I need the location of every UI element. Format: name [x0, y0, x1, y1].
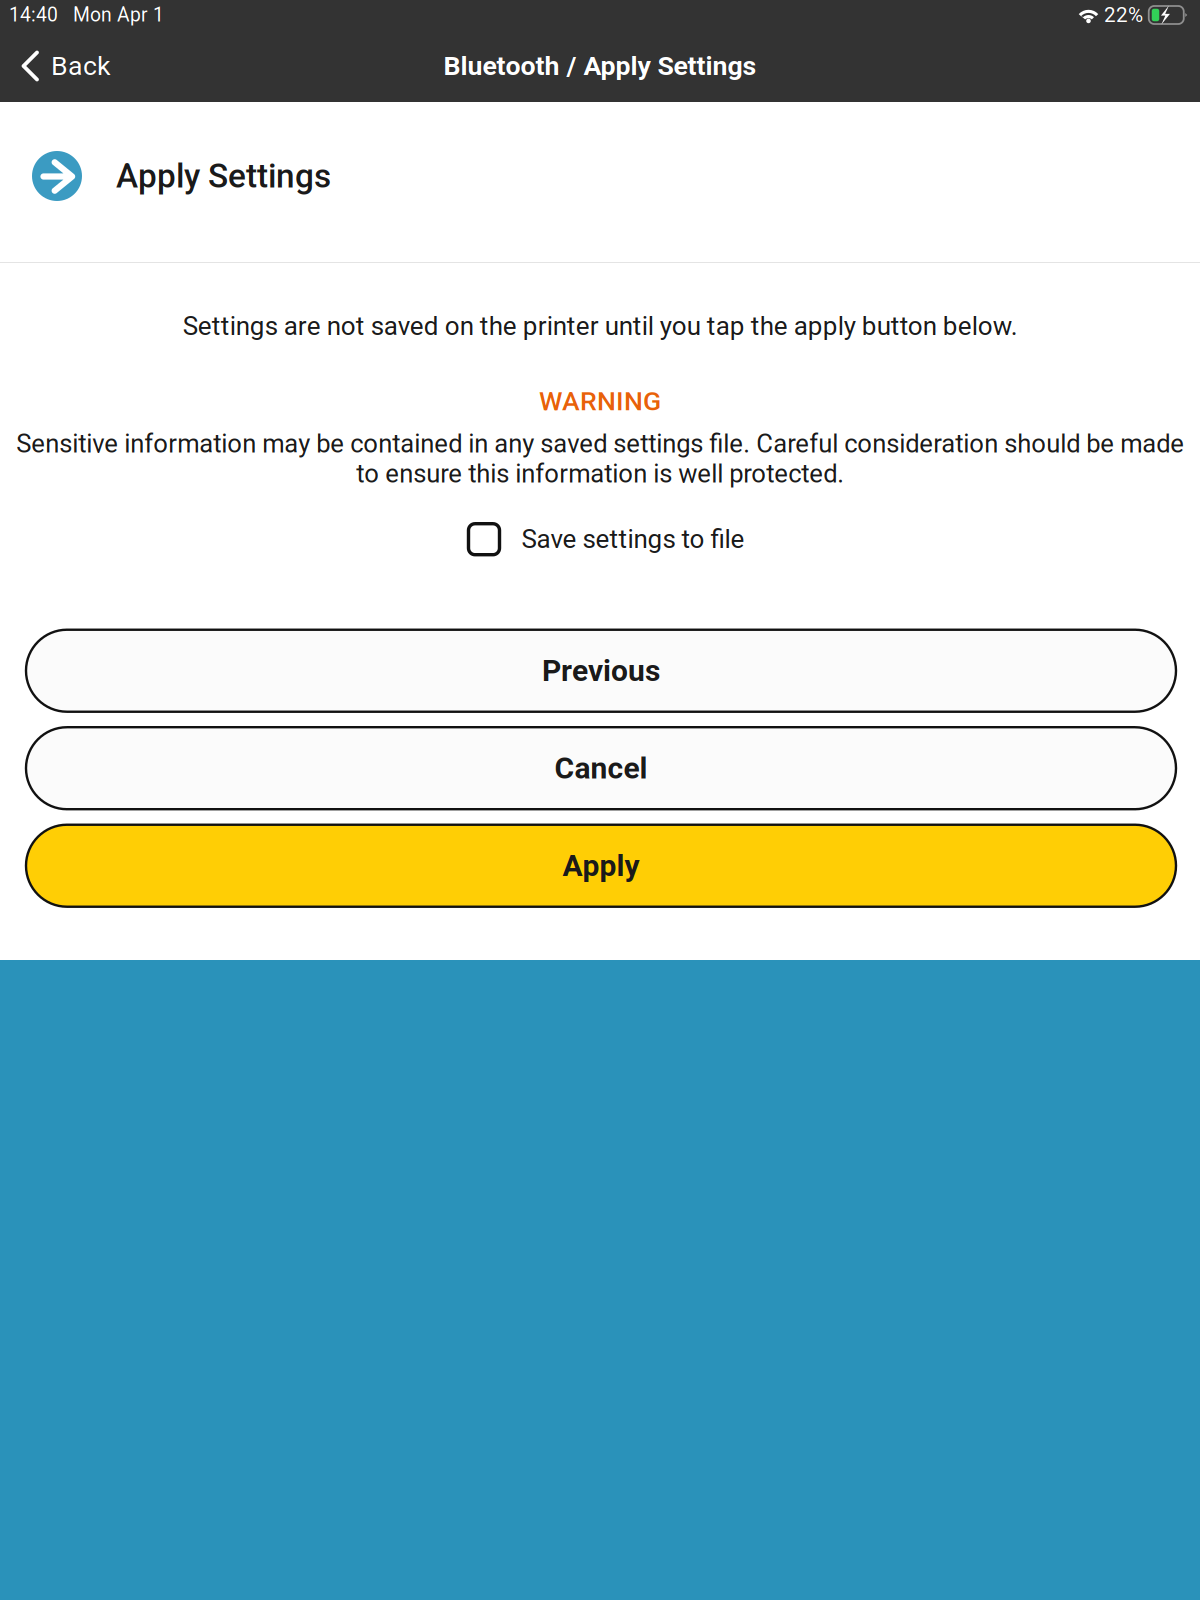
staticText: Settings are not saved on the printer un… [182, 311, 1017, 341]
staticText: Sensitive information may be contained i… [16, 429, 1184, 489]
button[interactable]: Cancel [26, 727, 1176, 809]
staticText: WARNING [539, 385, 661, 417]
button[interactable]: Apply [26, 825, 1176, 907]
staticText: Back [51, 50, 111, 82]
button[interactable]: Back [0, 34, 128, 98]
button[interactable]: Save settings to file [468, 524, 744, 555]
button[interactable]: Previous [26, 630, 1176, 712]
staticText: Cancel [554, 751, 647, 786]
staticText: Apply [562, 848, 639, 883]
staticText: Apply Settings [116, 156, 331, 196]
staticText: Previous [542, 653, 660, 688]
staticText: Bluetooth / Apply Settings [443, 50, 756, 82]
staticText: 14:40 [9, 4, 58, 26]
staticText: Save settings to file [521, 524, 744, 554]
staticText: Mon Apr 1 [73, 4, 164, 26]
staticText: 22% [1104, 3, 1143, 27]
